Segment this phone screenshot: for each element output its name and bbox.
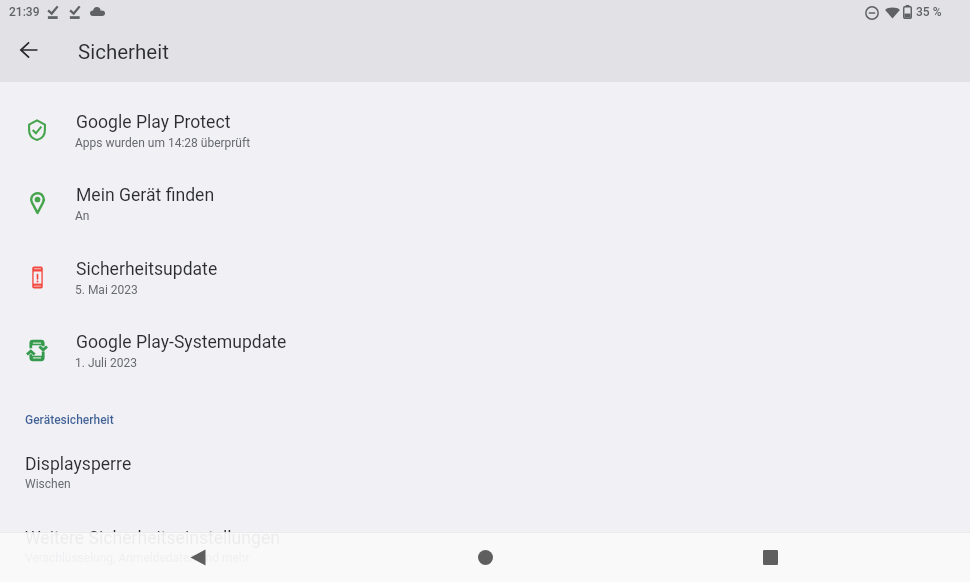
staticText: Apps wurden um 14:28 überprüft (75, 136, 251, 150)
staticText: 1. Juli 2023 (75, 356, 137, 370)
button[interactable]: Google Play Protect (0, 93, 970, 167)
staticText: An (75, 209, 90, 223)
button[interactable]: Recent apps (743, 532, 798, 582)
button[interactable]: Displaysperre (0, 437, 970, 511)
staticText: Sicherheit (78, 40, 169, 64)
staticText: Gerätesicherheit (25, 413, 114, 427)
button[interactable]: Weitere Sicherheitseinstellungen (0, 511, 970, 582)
staticText: Weitere Sicherheitseinstellungen (25, 528, 280, 549)
staticText: Displaysperre (25, 454, 132, 475)
staticText: Mein Gerät finden (76, 185, 215, 206)
button[interactable]: Sicherheitsupdate (0, 240, 970, 314)
staticText: Google Play-Systemupdate (76, 332, 287, 353)
button[interactable]: Back (170, 532, 225, 582)
button[interactable]: Mein Gerät finden (0, 166, 970, 240)
staticText: Sicherheitsupdate (76, 259, 218, 280)
button[interactable]: Back (9, 30, 49, 70)
staticText: 5. Mai 2023 (75, 283, 138, 297)
staticText: Verschlüsselung, Anmeldedaten und mehr (25, 551, 250, 565)
button[interactable]: Home (457, 532, 513, 582)
staticText: Wischen (25, 477, 71, 491)
button[interactable]: Google Play-Systemupdate (0, 313, 970, 387)
staticText: Google Play Protect (76, 112, 231, 133)
staticText: 35 % (916, 5, 942, 19)
staticText: 21:39 (9, 5, 40, 19)
